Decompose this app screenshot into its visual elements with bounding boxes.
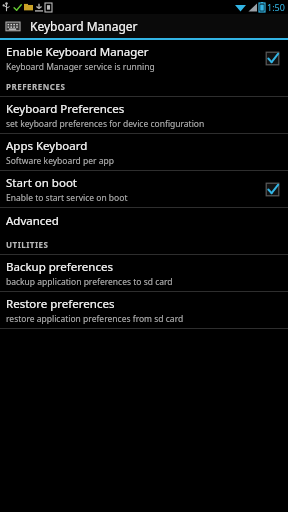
staticText: Restore preferences xyxy=(6,296,115,312)
staticText: Start on boot xyxy=(6,175,78,191)
staticText: Keyboard Manager xyxy=(30,18,138,34)
staticText: Software keyboard per app xyxy=(6,155,114,167)
button[interactable]: Apps Keyboard xyxy=(0,134,288,170)
staticText: PREFERENCES xyxy=(6,81,66,92)
button[interactable]: Keyboard Preferences xyxy=(0,97,288,133)
staticText: backup application preferences to sd car… xyxy=(6,276,173,288)
staticText: set keyboard preferences for device conf… xyxy=(6,118,205,130)
button[interactable]: Toggle xyxy=(265,51,280,66)
button[interactable]: Toggle xyxy=(265,182,280,197)
staticText: Advanced xyxy=(6,213,59,229)
staticText: Keyboard Preferences xyxy=(6,101,125,117)
staticText: Backup preferences xyxy=(6,259,113,275)
button[interactable]: Advanced xyxy=(0,208,288,234)
staticText: Apps Keyboard xyxy=(6,138,88,154)
staticText: Keyboard Manager service is running xyxy=(6,61,155,73)
staticText: 1:50 xyxy=(267,1,285,13)
button[interactable]: Restore preferences xyxy=(0,292,288,328)
staticText: Enable Keyboard Manager xyxy=(6,44,149,60)
button[interactable]: Backup preferences xyxy=(0,255,288,291)
button[interactable]: Enable Keyboard Manager xyxy=(0,40,288,76)
button[interactable]: Start on boot xyxy=(0,171,288,207)
staticText: UTILITIES xyxy=(6,239,49,250)
staticText: restore application preferences from sd … xyxy=(6,313,184,325)
staticText: Enable to start service on boot xyxy=(6,192,128,204)
